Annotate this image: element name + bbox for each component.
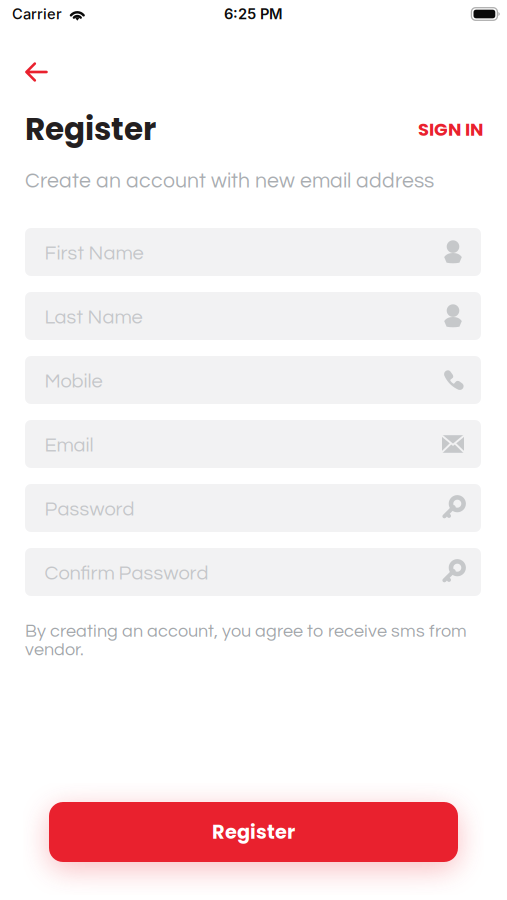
staticText: Carrier [12, 5, 62, 23]
staticText: 6:25 PM [224, 5, 283, 23]
staticText: First Name [45, 243, 144, 264]
button[interactable]: Password [25, 484, 481, 532]
staticText: Register [25, 107, 156, 151]
button[interactable]: Last Name [25, 292, 481, 340]
button[interactable]: Email [25, 420, 481, 468]
button[interactable]: Confirm Password [25, 548, 481, 596]
button[interactable]: SIGN IN [409, 110, 492, 149]
staticText: Email [45, 435, 94, 456]
staticText: Password [45, 499, 135, 520]
staticText: Register [212, 818, 295, 846]
staticText: Confirm Password [45, 563, 209, 584]
staticText: Create an account with new email address [25, 170, 434, 192]
button[interactable]: Mobile [25, 356, 481, 404]
button[interactable]: Back [14, 51, 59, 93]
button[interactable]: First Name [25, 228, 481, 276]
staticText: Last Name [45, 307, 143, 328]
staticText: Mobile [45, 371, 103, 392]
button[interactable]: Register [49, 802, 458, 862]
staticText: SIGN IN [418, 117, 483, 142]
staticText: By creating an account, you agree to rec… [25, 622, 467, 659]
